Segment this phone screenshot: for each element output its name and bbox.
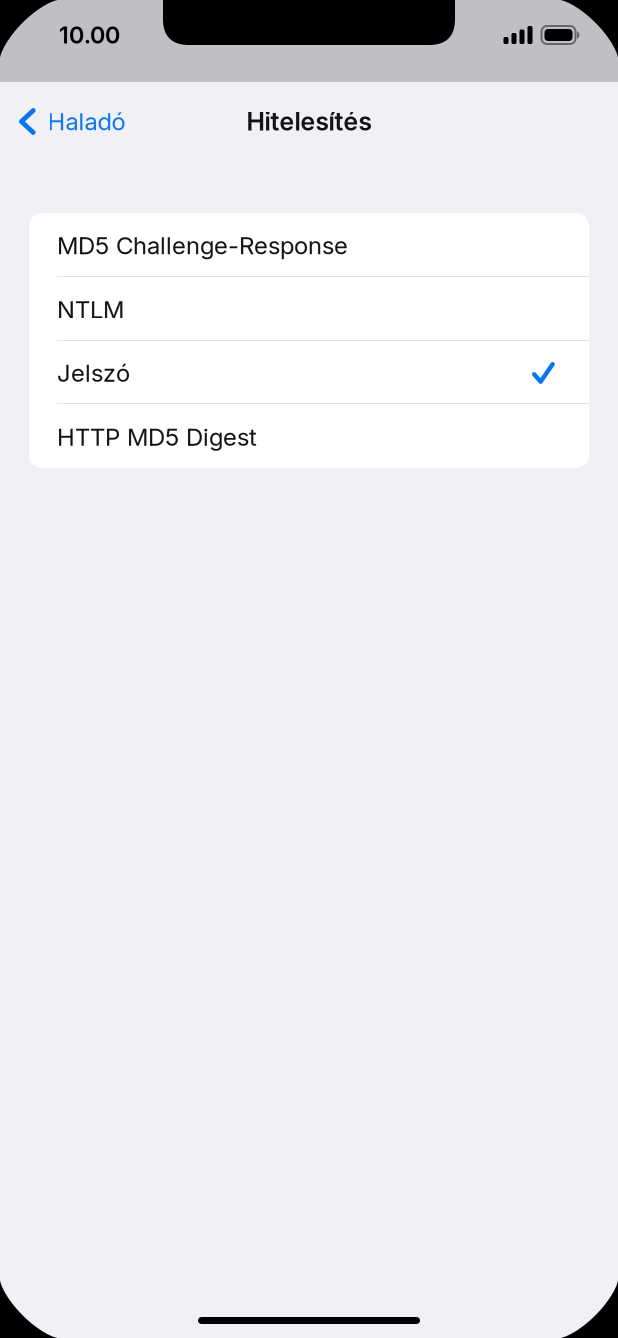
button[interactable]: NTLM	[29, 277, 589, 340]
staticText: 10.00	[59, 21, 120, 49]
staticText: Hitelesítés	[246, 106, 371, 137]
staticText: Haladó	[48, 107, 126, 136]
button[interactable]: Jelszó	[29, 341, 589, 403]
staticText: NTLM	[57, 295, 124, 324]
button[interactable]: HTTP MD5 Digest	[29, 404, 589, 468]
staticText: HTTP MD5 Digest	[57, 422, 257, 451]
button[interactable]: Haladó	[0, 88, 140, 154]
staticText: Jelszó	[57, 358, 130, 387]
button[interactable]: MD5 Challenge-Response	[29, 213, 589, 276]
staticText: MD5 Challenge-Response	[57, 231, 348, 260]
